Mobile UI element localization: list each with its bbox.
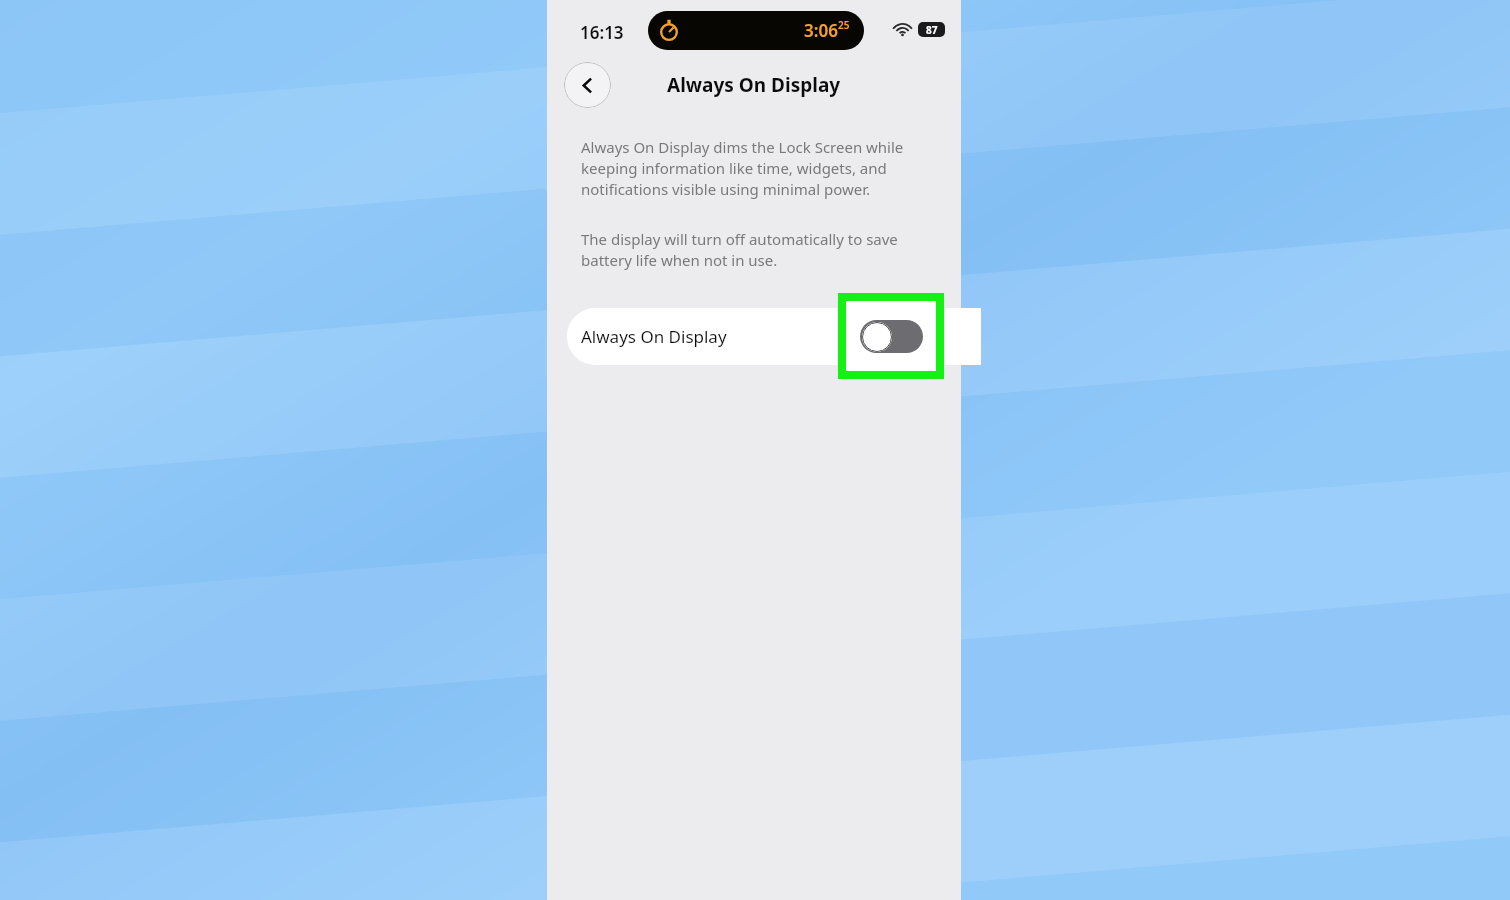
- staticText: The display will turn off automatically …: [581, 229, 941, 271]
- button[interactable]: Back: [564, 62, 611, 108]
- staticText: Always On Display dims the Lock Screen w…: [581, 137, 941, 200]
- button[interactable]: Always On Display: [567, 308, 981, 365]
- staticText: Always On Display: [667, 72, 841, 98]
- button[interactable]: Always On Display switch, off: [860, 320, 923, 353]
- staticText: Always On Display: [581, 325, 727, 348]
- staticText: 3:06: [804, 19, 838, 42]
- staticText: 25: [838, 18, 850, 32]
- staticText: 16:13: [580, 21, 624, 44]
- staticText: 87: [926, 23, 938, 37]
